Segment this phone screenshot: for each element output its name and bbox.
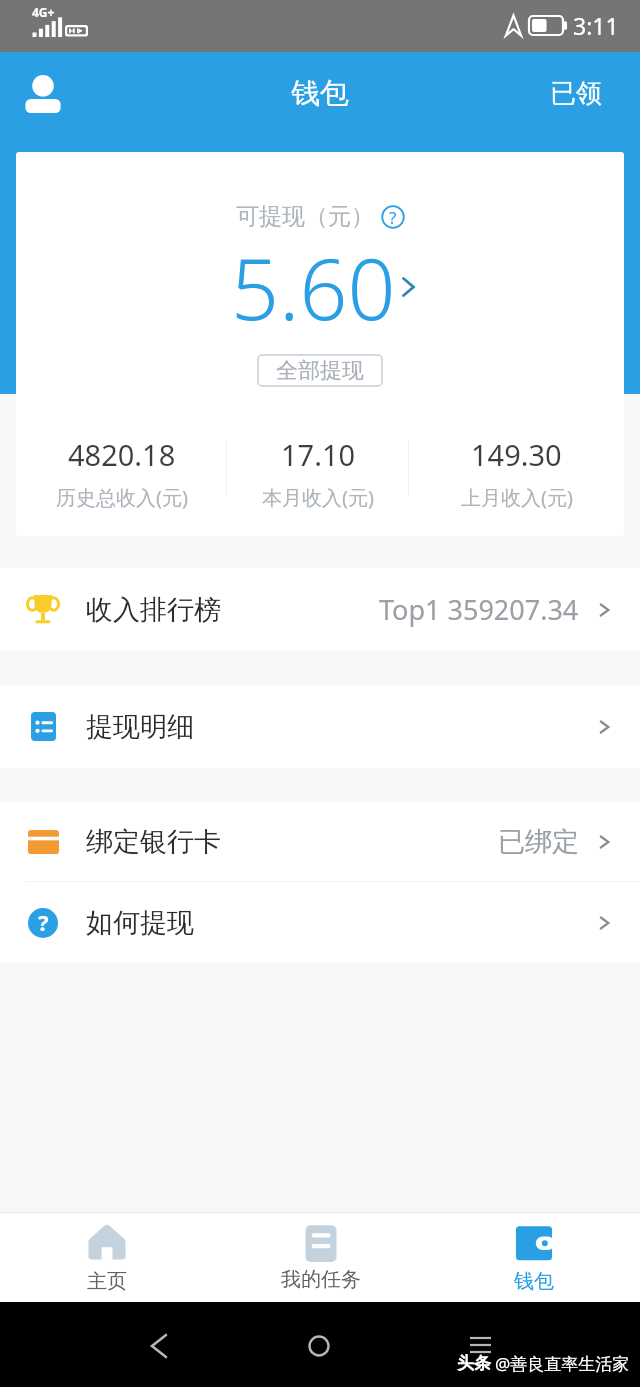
button[interactable]: 主页 [0,1213,214,1302]
button[interactable]: Profile [12,62,74,124]
staticText: 主页 [87,1269,127,1294]
staticText: ? [389,206,397,229]
button[interactable]: ? [0,882,640,963]
staticText: 历史总收入(元) [56,484,188,511]
staticText: 已绑定 [498,825,579,859]
staticText: 149.30 [471,435,562,474]
staticText: 提现明细 [86,710,194,744]
staticText: 钱包 [514,1269,554,1294]
staticText: 钱包 [291,75,349,112]
staticText: 3:11 [573,10,619,41]
staticText: 头条 [457,1353,491,1374]
button[interactable]: 提现明细 [0,685,640,768]
button[interactable]: 绑定银行卡 [0,802,640,881]
staticText: 我的任务 [281,1267,361,1292]
staticText: ? [38,907,49,937]
button[interactable]: Help [381,205,405,229]
button[interactable]: 收入排行榜 [0,568,640,651]
staticText: 上月收入(元) [461,484,573,511]
staticText: 17.10 [281,435,356,474]
button[interactable]: 我的任务 [214,1213,427,1302]
staticText: 4G+ [32,4,55,20]
button[interactable]: 钱包 [427,1213,640,1302]
staticText: 本月收入(元) [262,484,374,511]
staticText: 全部提现 [276,357,364,385]
button[interactable]: 已领 [532,63,640,124]
staticText: 5.60 [231,230,396,344]
staticText: 绑定银行卡 [86,825,221,859]
button[interactable]: 全部提现 [257,354,383,387]
staticText: 4820.18 [68,435,176,474]
staticText: 收入排行榜 [86,593,221,627]
staticText: 如何提现 [86,906,194,940]
staticText: @善良直率生活家 [495,1352,630,1375]
staticText: 已领 [550,77,602,110]
staticText: 可提现（元） [236,202,374,231]
staticText: Top1 359207.34 [379,591,579,628]
